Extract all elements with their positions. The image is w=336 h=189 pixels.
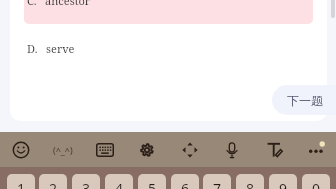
- button[interactable]: 9: [269, 174, 297, 189]
- button[interactable]: 1: [7, 174, 35, 189]
- staticText: 4: [115, 179, 124, 189]
- staticText: (^_^): [53, 144, 73, 156]
- button[interactable]: More options: [300, 134, 332, 166]
- staticText: D. serve: [27, 41, 75, 56]
- staticText: 1: [17, 179, 26, 189]
- button[interactable]: Settings: [131, 134, 163, 166]
- button[interactable]: 下一题: [272, 85, 336, 115]
- staticText: C. ancestor: [27, 0, 91, 8]
- button[interactable]: 2: [39, 174, 67, 189]
- button[interactable]: 3: [72, 174, 100, 189]
- button[interactable]: 8: [236, 174, 264, 189]
- button[interactable]: Handwriting: [258, 134, 290, 166]
- staticText: 0: [312, 179, 321, 189]
- staticText: 下一题: [287, 93, 323, 108]
- staticText: 3: [82, 179, 91, 189]
- button[interactable]: [24, 34, 313, 72]
- button[interactable]: Move cursor: [174, 134, 206, 166]
- staticText: 7: [213, 179, 222, 189]
- staticText: 9: [279, 179, 288, 189]
- button[interactable]: 5: [138, 174, 166, 189]
- button[interactable]: 0: [302, 174, 330, 189]
- staticText: 6: [181, 179, 190, 189]
- button[interactable]: [24, 0, 313, 24]
- button[interactable]: Kaomoji: [47, 134, 79, 166]
- staticText: 5: [148, 179, 157, 189]
- button[interactable]: 6: [171, 174, 199, 189]
- button[interactable]: 4: [105, 174, 133, 189]
- button[interactable]: 7: [203, 174, 231, 189]
- button[interactable]: Emoji: [5, 134, 37, 166]
- button[interactable]: Voice input: [216, 134, 248, 166]
- staticText: 2: [49, 179, 58, 189]
- button[interactable]: Keyboard layout: [89, 134, 121, 166]
- staticText: 8: [246, 179, 255, 189]
